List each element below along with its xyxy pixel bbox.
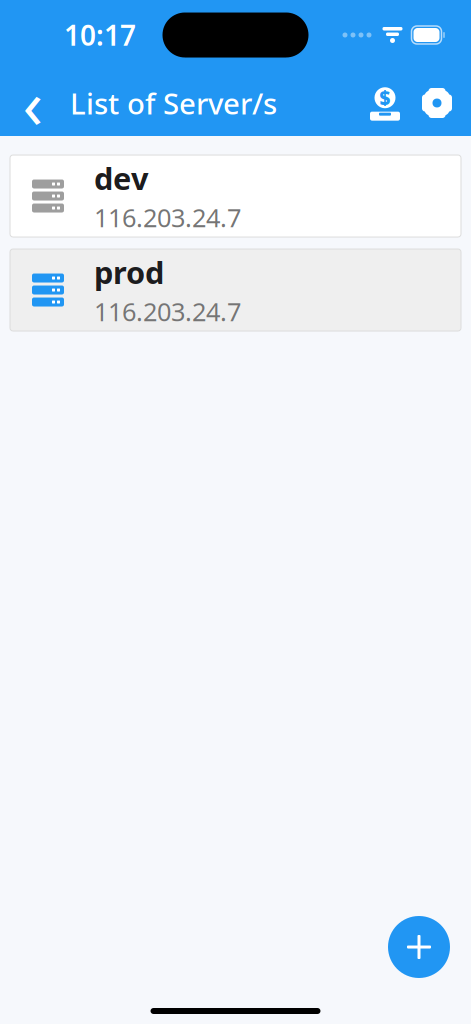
staticText: 10:17 — [64, 16, 136, 54]
button[interactable]: dev — [10, 155, 461, 237]
staticText: $ — [379, 85, 390, 110]
staticText: 116.203.24.7 — [94, 294, 241, 328]
button[interactable]: prod — [10, 249, 461, 331]
staticText: List of Server/s — [70, 83, 277, 122]
button[interactable]: Billing — [359, 78, 411, 127]
staticText: dev — [94, 158, 149, 198]
button[interactable]: Settings — [411, 79, 471, 127]
staticText: ‹ — [22, 59, 43, 147]
button[interactable]: Add server — [388, 916, 450, 978]
button[interactable]: Back — [0, 75, 56, 131]
staticText: 116.203.24.7 — [94, 200, 241, 234]
staticText: prod — [94, 252, 164, 292]
